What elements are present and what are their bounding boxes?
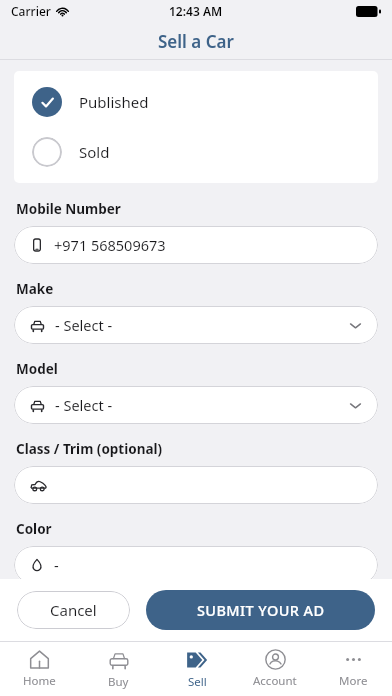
staticText: Sell xyxy=(188,674,207,690)
button[interactable]: SUBMIT YOUR AD xyxy=(146,590,375,630)
button[interactable]: +971 568509673 xyxy=(14,226,378,264)
staticText: Home xyxy=(23,673,56,689)
button[interactable]: - Select - xyxy=(14,386,378,424)
staticText: SUBMIT YOUR AD xyxy=(197,600,325,620)
button[interactable] xyxy=(14,466,378,504)
staticText: Carrier xyxy=(11,3,51,19)
staticText: Cancel xyxy=(50,600,97,620)
staticText: Published xyxy=(79,92,149,112)
button[interactable]: - xyxy=(14,546,378,584)
staticText: +971 568509673 xyxy=(54,235,166,255)
button[interactable]: Cancel xyxy=(17,591,130,629)
button[interactable]: Buy xyxy=(79,642,158,696)
staticText: Color xyxy=(16,520,52,538)
staticText: - Select - xyxy=(55,395,113,415)
staticText: Make xyxy=(16,280,54,298)
staticText: Class / Trim (optional) xyxy=(16,440,163,458)
staticText: Buy xyxy=(108,674,129,690)
staticText: Sold xyxy=(79,142,110,162)
staticText: - xyxy=(54,555,59,575)
staticText: Model xyxy=(16,360,58,378)
button[interactable]: Sell xyxy=(158,642,236,696)
staticText: Mobile Number xyxy=(16,200,121,218)
staticText: More xyxy=(339,673,368,689)
staticText: Sell a Car xyxy=(158,30,234,53)
button[interactable]: Account xyxy=(236,642,314,696)
button[interactable]: More xyxy=(314,642,392,696)
button[interactable]: Published xyxy=(14,83,378,121)
staticText: Account xyxy=(253,673,297,689)
button[interactable]: Home xyxy=(0,642,79,696)
button[interactable]: - Select - xyxy=(14,306,378,344)
button[interactable]: Sold xyxy=(14,133,378,171)
staticText: 12:43 AM xyxy=(169,3,223,19)
staticText: - Select - xyxy=(55,315,113,335)
